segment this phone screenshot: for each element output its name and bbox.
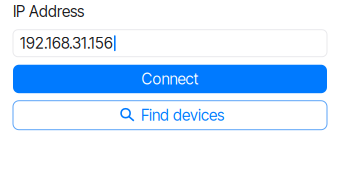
button[interactable]: 192.168.31.156: [13, 30, 327, 57]
button[interactable]: Find devices: [13, 101, 327, 130]
staticText: Find devices: [141, 106, 224, 125]
staticText: Connect: [141, 70, 198, 88]
staticText: 192.168.31.156: [20, 34, 113, 53]
staticText: IP Address: [13, 2, 84, 21]
button[interactable]: Connect: [13, 65, 327, 93]
